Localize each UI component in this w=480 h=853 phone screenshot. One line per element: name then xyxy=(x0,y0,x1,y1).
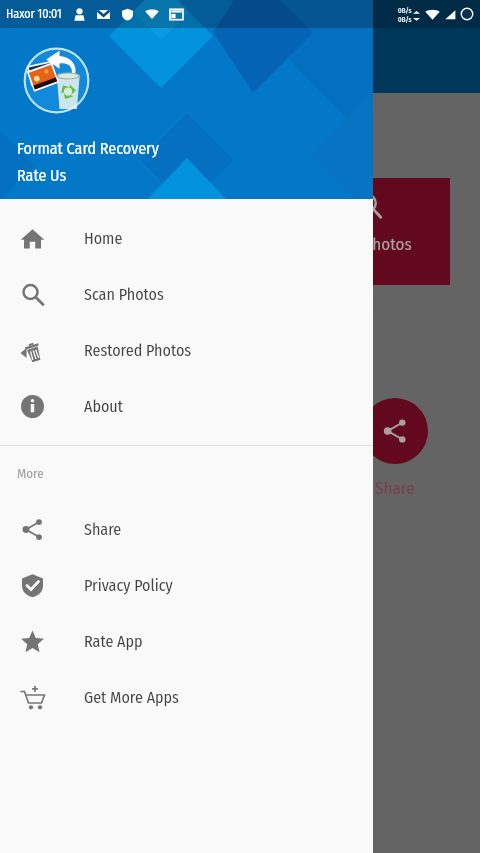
button[interactable]: Restored Photos xyxy=(0,322,373,378)
staticText: 0B/s xyxy=(398,15,412,23)
button[interactable]: Rate App xyxy=(0,613,373,669)
staticText: Format Card Recovery xyxy=(72,52,241,75)
staticText: More xyxy=(17,466,44,482)
staticText: Share xyxy=(84,520,122,539)
staticText: Rate App xyxy=(84,632,143,651)
staticText: Restored Photos xyxy=(84,341,192,360)
staticText: Get More Apps xyxy=(84,688,179,707)
button[interactable]: Get More Apps xyxy=(0,669,373,725)
staticText: 0B/s xyxy=(398,6,412,14)
staticText: Home xyxy=(84,229,123,248)
button[interactable]: About xyxy=(0,378,373,434)
button[interactable]: Privacy Policy xyxy=(0,557,373,613)
staticText: About xyxy=(84,397,123,416)
staticText: Scan Photos xyxy=(327,234,412,254)
button[interactable]: Share xyxy=(17,312,463,520)
staticText: Share xyxy=(375,478,415,498)
button[interactable]: Home xyxy=(0,210,373,266)
staticText: Privacy Policy xyxy=(84,576,173,595)
button[interactable]: Scan Photos xyxy=(0,266,373,322)
staticText: Scan Photos xyxy=(84,285,164,304)
button[interactable]: Share xyxy=(0,501,373,557)
button[interactable]: Scan Photos xyxy=(17,110,463,296)
staticText: Haxor 10:01 xyxy=(6,7,62,21)
staticText: Rate Us xyxy=(17,166,67,185)
staticText: Format Card Recovery xyxy=(17,139,159,158)
